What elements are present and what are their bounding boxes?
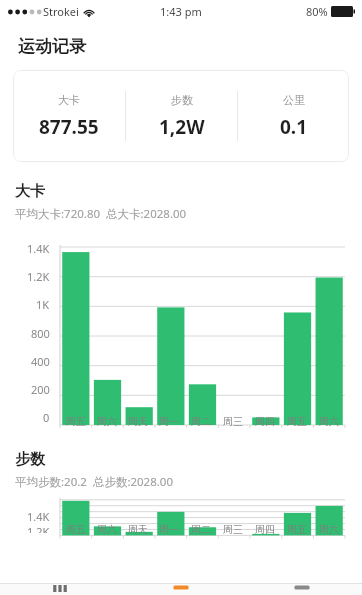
button[interactable]: Profile bbox=[241, 584, 362, 595]
staticText: 大卡 bbox=[58, 93, 80, 107]
staticText: 周四 bbox=[255, 415, 275, 428]
staticText: 1.2K bbox=[27, 524, 50, 533]
staticText: 大卡 bbox=[15, 182, 45, 201]
staticText: 周四 bbox=[255, 523, 275, 536]
staticText: 周天 bbox=[128, 415, 148, 428]
staticText: 平均步数:20.2 总步数:2028.00 bbox=[15, 474, 174, 490]
staticText: 周二 bbox=[191, 415, 211, 428]
staticText: 80% bbox=[306, 4, 328, 19]
staticText: 周一 bbox=[159, 523, 179, 536]
staticText: 200 bbox=[31, 382, 50, 397]
staticText: 周五 bbox=[66, 415, 86, 428]
staticText: 周三 bbox=[223, 523, 243, 536]
button[interactable]: 1.4K bbox=[0, 496, 362, 536]
staticText: 周六 bbox=[319, 415, 339, 428]
button[interactable]: 大卡 bbox=[13, 70, 349, 162]
staticText: 周三 bbox=[223, 415, 243, 428]
staticText: 1.4K bbox=[27, 241, 50, 256]
staticText: 周天 bbox=[128, 523, 148, 536]
staticText: 周二 bbox=[191, 523, 211, 536]
staticText: 1.4K bbox=[27, 509, 50, 524]
staticText: 步数 bbox=[15, 450, 45, 469]
staticText: Strokei bbox=[43, 4, 79, 19]
staticText: 运动记录 bbox=[18, 36, 86, 57]
staticText: 公里 bbox=[283, 93, 305, 107]
button[interactable]: Activity bbox=[120, 584, 241, 595]
staticText: 1:43 pm bbox=[160, 4, 202, 19]
staticText: 周五 bbox=[287, 523, 307, 536]
staticText: 0 bbox=[43, 410, 50, 425]
staticText: 周六 bbox=[97, 415, 117, 428]
button[interactable]: 步数 bbox=[126, 93, 237, 140]
staticText: 1,2W bbox=[159, 114, 205, 140]
staticText: 周五 bbox=[66, 523, 86, 536]
button[interactable]: 公里 bbox=[238, 93, 349, 140]
staticText: 0.1 bbox=[280, 114, 308, 140]
button[interactable]: 1.4K bbox=[0, 228, 362, 428]
staticText: 周五 bbox=[287, 415, 307, 428]
staticText: 877.55 bbox=[39, 114, 99, 140]
button[interactable]: Records bbox=[0, 584, 120, 595]
staticText: 周六 bbox=[319, 523, 339, 536]
staticText: 1K bbox=[36, 297, 50, 312]
staticText: 周一 bbox=[159, 415, 179, 428]
staticText: 周六 bbox=[97, 523, 117, 536]
staticText: 步数 bbox=[171, 93, 193, 107]
staticText: 1.2K bbox=[27, 269, 50, 284]
staticText: 平均大卡:720.80 总大卡:2028.00 bbox=[15, 206, 187, 222]
button[interactable]: 大卡 bbox=[13, 93, 125, 140]
staticText: 800 bbox=[31, 326, 50, 341]
staticText: 400 bbox=[31, 354, 50, 369]
